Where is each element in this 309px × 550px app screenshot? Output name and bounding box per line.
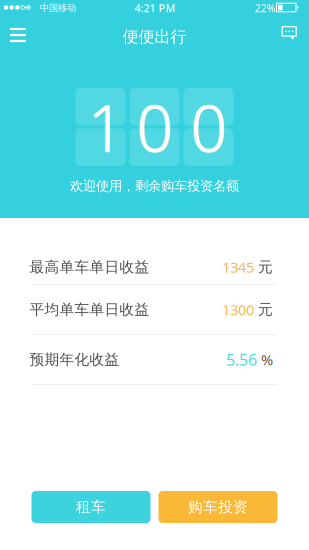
staticText: 0 [190, 82, 227, 171]
staticText: 购车投资 [188, 498, 248, 516]
staticText: 中国移动 [40, 2, 76, 14]
staticText: 最高单车单日收益 [29, 258, 149, 276]
staticText: 4:21 PM [134, 1, 175, 15]
staticText: 便便出行 [122, 27, 186, 47]
staticText: % [261, 350, 273, 369]
staticText: 0 [136, 82, 173, 171]
button[interactable]: 租车 [31, 491, 150, 523]
staticText: 租车 [76, 498, 106, 516]
staticText: 元 [258, 258, 273, 276]
staticText: 1 [87, 82, 124, 171]
staticText: 欢迎使用，剩余购车投资名额 [70, 178, 239, 194]
button[interactable]: 购车投资 [158, 491, 277, 523]
staticText: 1300 [222, 300, 254, 319]
button[interactable]: Messages [273, 16, 307, 50]
staticText: 1345 [222, 257, 254, 277]
staticText: 5.56 [226, 349, 257, 370]
staticText: 元 [258, 300, 273, 318]
button[interactable]: Menu [1, 18, 35, 52]
staticText: 平均单车单日收益 [29, 300, 149, 318]
staticText: 22% [254, 1, 275, 15]
staticText: 预期年化收益 [29, 350, 119, 368]
